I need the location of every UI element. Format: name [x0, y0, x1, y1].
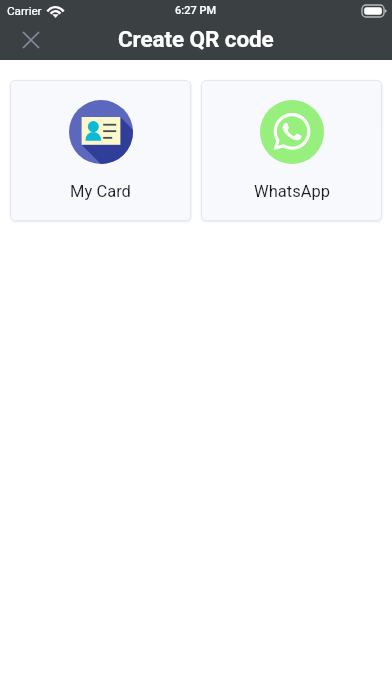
staticText: WhatsApp: [254, 182, 330, 201]
staticText: Create QR code: [118, 26, 274, 52]
button[interactable]: Close: [8, 22, 52, 60]
button[interactable]: WhatsApp: [201, 80, 382, 221]
button[interactable]: My Card: [10, 80, 191, 221]
staticText: My Card: [70, 182, 131, 201]
staticText: 6:27 PM: [175, 4, 217, 17]
staticText: Carrier: [7, 4, 42, 18]
